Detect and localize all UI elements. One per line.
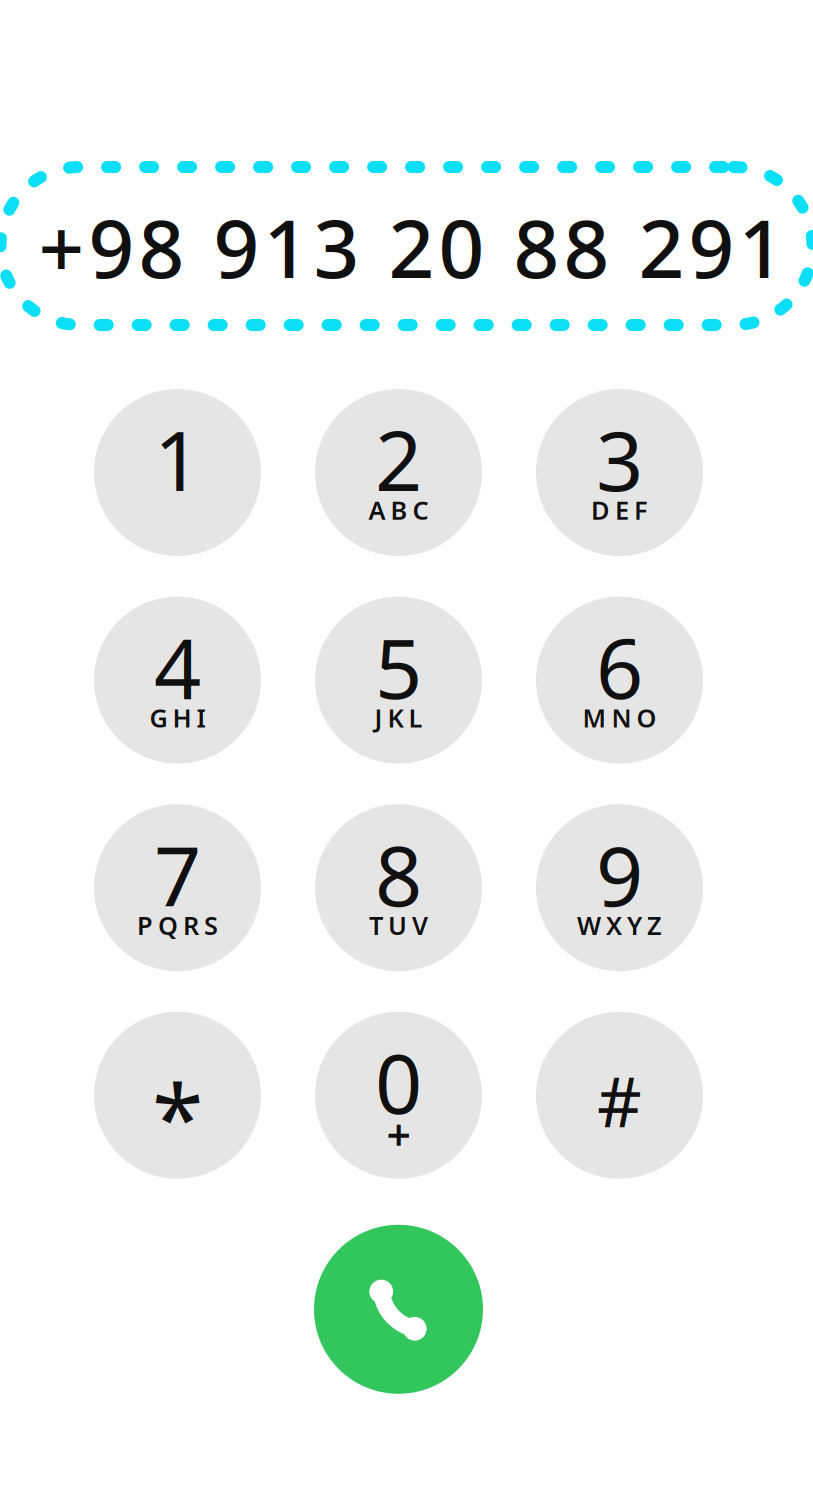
- staticText: *: [152, 1054, 203, 1178]
- staticText: +: [386, 1106, 410, 1163]
- button[interactable]: 8: [315, 804, 482, 971]
- staticText: 6: [596, 612, 643, 721]
- button[interactable]: 0: [315, 1012, 482, 1179]
- staticText: 7: [154, 819, 201, 929]
- staticText: 8: [375, 819, 422, 929]
- staticText: MNO: [582, 701, 656, 734]
- staticText: PQRS: [137, 908, 218, 942]
- staticText: WXYZ: [577, 908, 662, 942]
- staticText: DEF: [591, 493, 648, 527]
- button[interactable]: Call: [314, 1224, 483, 1395]
- button[interactable]: 6: [536, 597, 703, 764]
- button[interactable]: #: [536, 1012, 703, 1179]
- button[interactable]: 3: [536, 389, 703, 556]
- button[interactable]: 1: [94, 389, 261, 556]
- staticText: TUV: [369, 908, 428, 942]
- staticText: 3: [596, 404, 643, 514]
- staticText: 9: [596, 819, 643, 929]
- button[interactable]: 5: [315, 597, 482, 764]
- staticText: [616, 1116, 623, 1150]
- staticText: +98 913 20 88 291: [38, 194, 784, 300]
- staticText: 1: [154, 404, 201, 514]
- staticText: 4: [154, 612, 201, 721]
- staticText: ABC: [368, 493, 428, 527]
- staticText: 5: [375, 612, 422, 721]
- staticText: JKL: [374, 701, 422, 734]
- button[interactable]: 4: [94, 597, 261, 764]
- button[interactable]: *: [94, 1012, 261, 1179]
- button[interactable]: 7: [94, 804, 261, 971]
- staticText: 0: [375, 1027, 422, 1137]
- button[interactable]: 9: [536, 804, 703, 971]
- staticText: 2: [375, 404, 422, 514]
- staticText: #: [597, 1054, 642, 1146]
- staticText: GHI: [149, 701, 205, 734]
- button[interactable]: 2: [315, 389, 482, 556]
